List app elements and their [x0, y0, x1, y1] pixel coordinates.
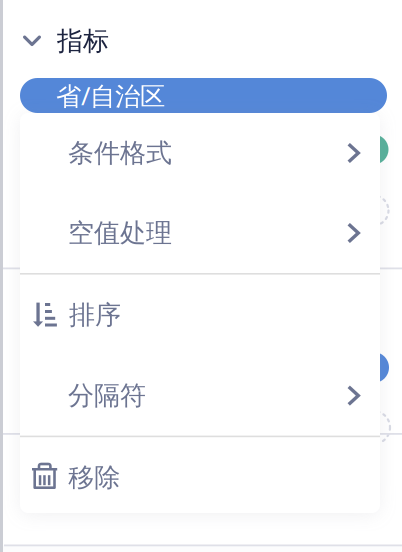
staticText: 移除 [68, 461, 120, 494]
staticText: 分隔符 [68, 379, 146, 412]
staticText: 条件格式 [68, 137, 172, 169]
button[interactable]: 条件格式 [20, 113, 380, 193]
button[interactable]: 指标 [23, 24, 203, 58]
button[interactable]: 空值处理 [20, 193, 380, 273]
button[interactable]: 分隔符 [20, 356, 380, 436]
staticText: 指标 [57, 25, 109, 57]
button[interactable]: 省/自治区 [20, 78, 387, 113]
staticText: 空值处理 [68, 217, 172, 249]
button[interactable]: 移除 [20, 437, 380, 518]
button[interactable]: 排序 [20, 275, 380, 356]
staticText: 省/自治区 [56, 78, 165, 113]
staticText: 排序 [69, 299, 121, 331]
